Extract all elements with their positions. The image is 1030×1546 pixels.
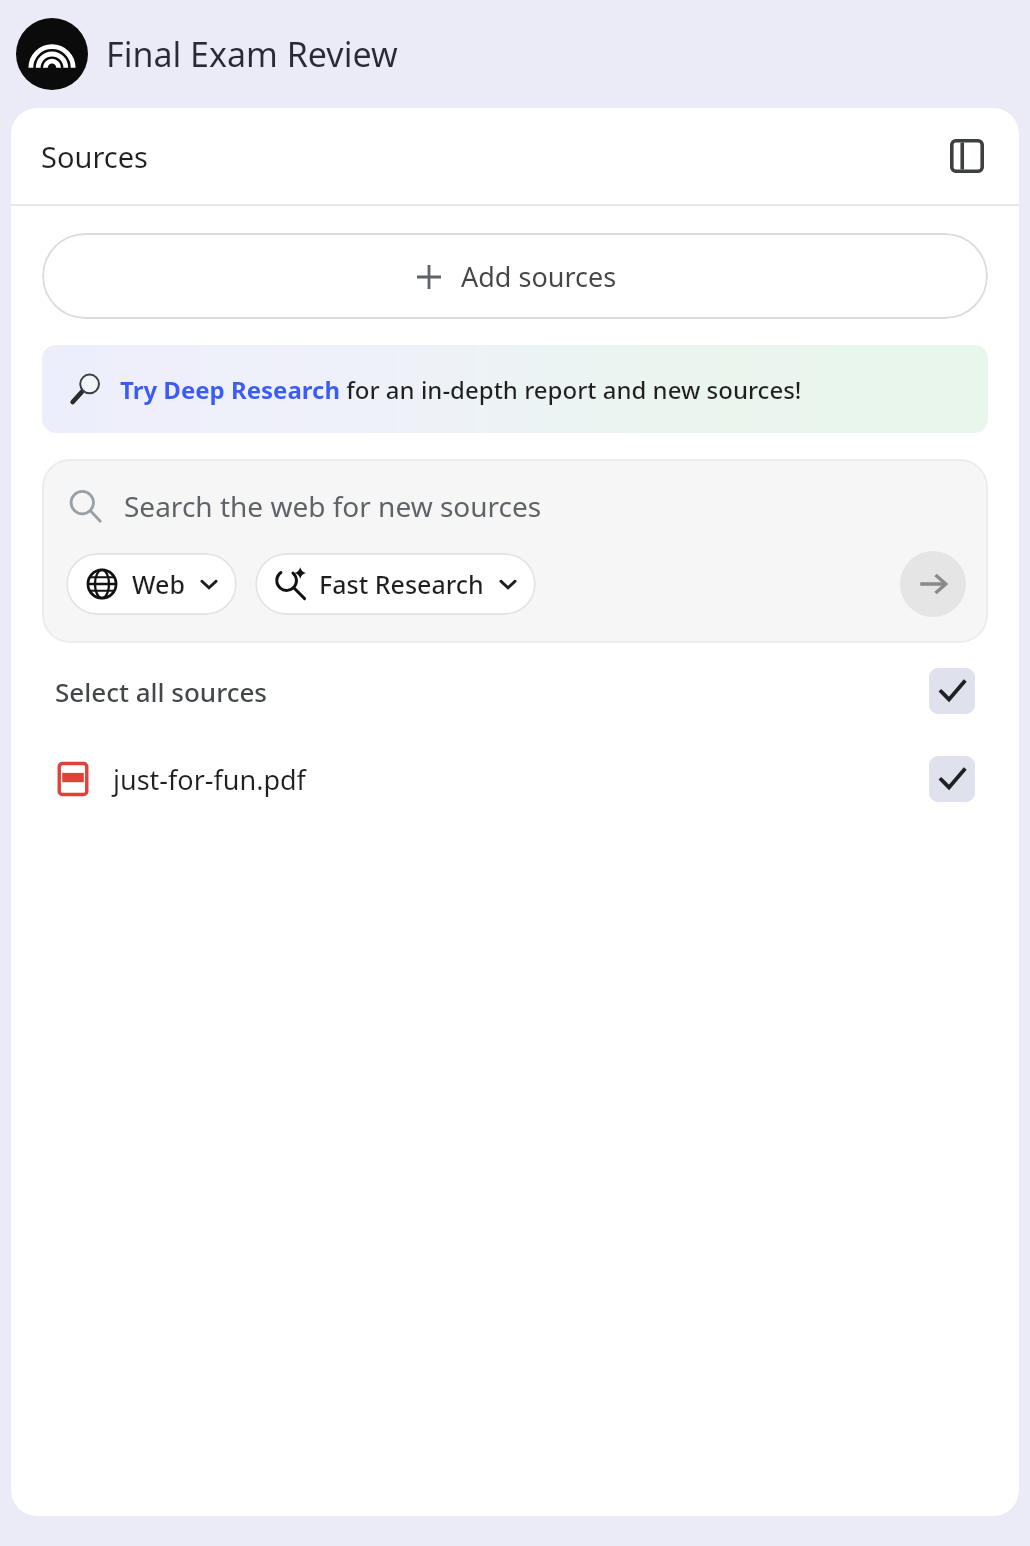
button[interactable]: Selected	[929, 756, 975, 802]
staticText: just-for-fun.pdf	[113, 761, 306, 798]
button[interactable]: just-for-fun.pdf	[11, 747, 1019, 811]
button[interactable]: NotebookLM home	[16, 18, 88, 90]
staticText: Try Deep Research for an in-depth report…	[120, 373, 802, 406]
button[interactable]: Fast Research	[255, 553, 536, 615]
button[interactable]: Select all sources	[11, 659, 1019, 723]
staticText: Final Exam Review	[106, 31, 398, 77]
button[interactable]: Selected	[929, 668, 975, 714]
staticText: Select all sources	[55, 674, 267, 709]
button[interactable]: Toggle panel	[941, 130, 993, 182]
button[interactable]: Add sources	[42, 233, 988, 319]
button[interactable]: Search the web for new sources	[68, 487, 988, 525]
staticText: Search the web for new sources	[124, 487, 542, 525]
button[interactable]: Try Deep Research for an in-depth report…	[42, 345, 988, 433]
button[interactable]: Search	[900, 551, 966, 617]
staticText: Fast Research	[319, 567, 484, 601]
button[interactable]: Web	[66, 553, 237, 615]
staticText: Web	[132, 567, 185, 601]
staticText: Sources	[41, 137, 148, 176]
staticText: Add sources	[461, 258, 617, 295]
